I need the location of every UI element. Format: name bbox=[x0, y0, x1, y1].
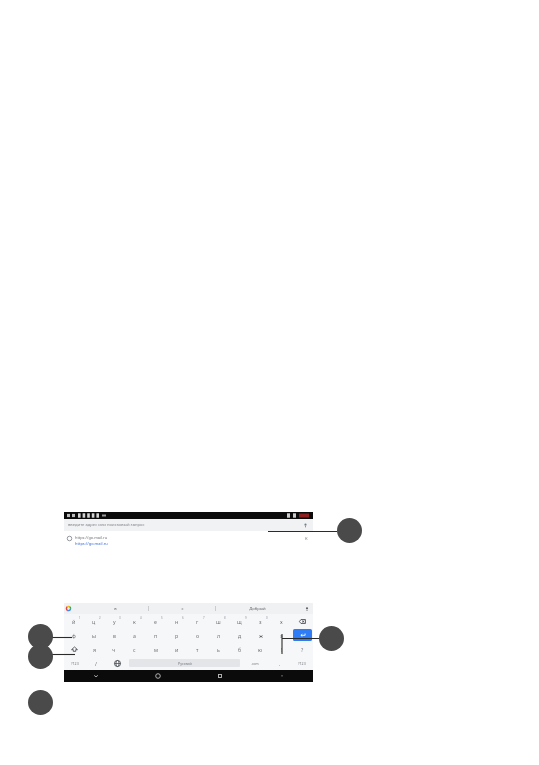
staticText: о bbox=[196, 632, 200, 639]
button[interactable]: Recents bbox=[189, 670, 251, 682]
button[interactable]: Google bbox=[66, 606, 71, 611]
button[interactable]: Home bbox=[127, 670, 189, 682]
staticText: Русский bbox=[178, 661, 192, 666]
staticText: ы bbox=[92, 632, 96, 639]
button[interactable]: щ bbox=[229, 614, 250, 628]
staticText: у bbox=[113, 618, 116, 625]
button[interactable]: з bbox=[250, 614, 271, 628]
button[interactable]: с bbox=[149, 603, 215, 614]
button[interactable]: н bbox=[166, 614, 187, 628]
button[interactable]: More bbox=[251, 670, 313, 682]
staticText: https://go.mail.ru bbox=[75, 541, 108, 546]
button[interactable]: ! bbox=[271, 642, 292, 656]
staticText: ж bbox=[259, 632, 263, 639]
staticText: . bbox=[279, 660, 281, 667]
staticText: х bbox=[280, 618, 283, 625]
staticText: ? bbox=[301, 646, 304, 653]
button[interactable]: л bbox=[208, 628, 229, 642]
button[interactable]: а bbox=[124, 628, 145, 642]
button[interactable]: е bbox=[145, 614, 166, 628]
button[interactable]: Callout marker bbox=[319, 626, 344, 651]
button[interactable]: п bbox=[145, 628, 166, 642]
staticText: ш bbox=[216, 618, 221, 625]
staticText: ! bbox=[281, 646, 283, 653]
button[interactable]: у bbox=[104, 614, 124, 628]
staticText: ь bbox=[217, 646, 220, 653]
button[interactable]: Callout marker bbox=[337, 518, 362, 543]
button[interactable]: ?123 bbox=[291, 656, 313, 670]
staticText: 9 bbox=[245, 616, 247, 620]
button[interactable]: р bbox=[166, 628, 187, 642]
button[interactable]: / bbox=[85, 656, 106, 670]
staticText: 7 bbox=[203, 616, 205, 620]
button[interactable]: ч bbox=[104, 642, 124, 656]
button[interactable]: Добрый bbox=[216, 603, 299, 614]
staticText: с bbox=[133, 646, 136, 653]
button[interactable]: в bbox=[82, 603, 148, 614]
button[interactable]: г bbox=[187, 614, 208, 628]
button[interactable]: Enter bbox=[293, 629, 312, 641]
staticText: 4 bbox=[140, 616, 142, 620]
button[interactable]: о bbox=[187, 628, 208, 642]
staticText: 0 bbox=[266, 616, 268, 620]
staticText: щ bbox=[237, 618, 242, 625]
button[interactable]: с bbox=[124, 642, 145, 656]
button[interactable]: ц bbox=[84, 614, 104, 628]
button[interactable]: Voice search bbox=[302, 522, 309, 529]
staticText: й bbox=[72, 618, 76, 625]
staticText: К bbox=[305, 536, 308, 542]
button[interactable]: и bbox=[166, 642, 187, 656]
staticText: 3 bbox=[119, 616, 121, 620]
staticText: ф bbox=[72, 632, 76, 639]
staticText: / bbox=[95, 660, 97, 667]
button[interactable]: Callout marker bbox=[28, 690, 53, 715]
button[interactable]: т bbox=[187, 642, 208, 656]
button[interactable]: .com bbox=[241, 656, 269, 670]
button[interactable]: э bbox=[271, 628, 292, 642]
button[interactable]: введите адрес или поисковый запрос bbox=[64, 519, 313, 531]
button[interactable]: Voice input bbox=[304, 606, 310, 612]
button[interactable]: Hide keyboard bbox=[64, 670, 127, 682]
button[interactable]: ?123 bbox=[64, 656, 85, 670]
button[interactable]: ш bbox=[208, 614, 229, 628]
button[interactable]: Callout marker bbox=[28, 624, 53, 649]
button[interactable]: ? bbox=[292, 642, 313, 656]
button[interactable]: Shift bbox=[64, 642, 84, 656]
staticText: п bbox=[154, 632, 158, 639]
button[interactable]: ж bbox=[250, 628, 271, 642]
button[interactable]: Callout marker bbox=[28, 644, 53, 669]
button[interactable]: б bbox=[229, 642, 250, 656]
button[interactable]: https://go.mail.ru bbox=[64, 531, 313, 551]
staticText: Добрый bbox=[249, 606, 266, 612]
button[interactable]: в bbox=[104, 628, 124, 642]
button[interactable]: ь bbox=[208, 642, 229, 656]
button[interactable]: х bbox=[271, 614, 292, 628]
staticText: и bbox=[175, 646, 179, 653]
button[interactable]: ф bbox=[64, 628, 84, 642]
button[interactable]: Backspace bbox=[292, 614, 313, 628]
staticText: к bbox=[133, 618, 136, 625]
button[interactable]: Change language bbox=[106, 656, 128, 670]
button[interactable]: ы bbox=[84, 628, 104, 642]
button[interactable]: м bbox=[145, 642, 166, 656]
button[interactable]: ю bbox=[250, 642, 271, 656]
staticText: е bbox=[154, 618, 157, 625]
staticText: г bbox=[196, 618, 199, 625]
staticText: с bbox=[181, 606, 184, 612]
staticText: .com bbox=[251, 661, 259, 665]
staticText: https://go.mail.ru bbox=[75, 535, 108, 540]
button[interactable]: я bbox=[84, 642, 104, 656]
staticText: в bbox=[113, 632, 116, 639]
staticText: а bbox=[133, 632, 136, 639]
staticText: в bbox=[114, 606, 117, 612]
staticText: 5 bbox=[161, 616, 163, 620]
button[interactable]: й bbox=[64, 614, 84, 628]
button[interactable]: д bbox=[229, 628, 250, 642]
button[interactable]: Русский bbox=[129, 659, 240, 667]
staticText: д bbox=[238, 632, 242, 639]
button[interactable]: к bbox=[124, 614, 145, 628]
staticText: з bbox=[259, 618, 262, 625]
staticText: 1 bbox=[79, 616, 81, 620]
staticText: н bbox=[175, 618, 179, 625]
